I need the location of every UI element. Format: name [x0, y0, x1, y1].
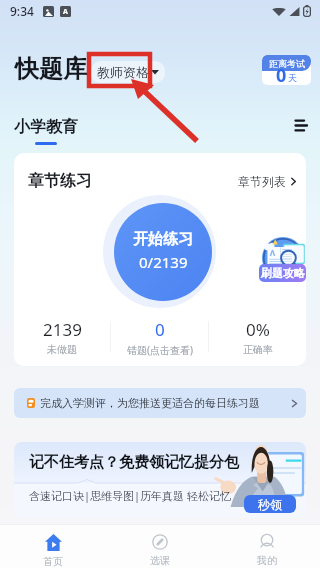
button[interactable]: 小学教育 [14, 117, 78, 145]
staticText: 我的 [257, 554, 277, 567]
button[interactable]: 章节列表 [238, 174, 296, 189]
button[interactable]: Menu [289, 113, 313, 137]
button[interactable]: 首页 [0, 525, 106, 568]
staticText: 未做题 [47, 343, 77, 356]
button[interactable]: 刷题攻略 [262, 237, 304, 279]
staticText: 0 [276, 63, 287, 85]
staticText: 完成入学测评，为您推送更适合的每日练习题 [40, 396, 260, 410]
staticText: 0% [246, 318, 270, 341]
staticText: 首页 [43, 555, 63, 568]
staticText: 快题库 [15, 54, 87, 84]
button[interactable]: 教师资格 [91, 61, 165, 83]
staticText: 距离考试 [269, 58, 305, 69]
staticText: 0 [155, 318, 165, 341]
button[interactable]: 2139 [14, 318, 110, 363]
staticText: 2139 [43, 318, 82, 341]
button[interactable]: 选课 [106, 525, 213, 568]
staticText: A [63, 7, 68, 17]
staticText: 记不住考点？免费领记忆提分包 [29, 453, 239, 472]
staticText: 含速记口诀|思维导图|历年真题 轻松记忆 [29, 488, 231, 503]
staticText: 教师资格 [97, 64, 149, 80]
staticText: 刷题攻略 [261, 266, 305, 280]
button[interactable]: 完成入学测评，为您推送更适合的每日练习题 [14, 388, 306, 418]
staticText: 0/2139 [139, 252, 188, 272]
staticText: 秒领 [258, 497, 282, 512]
staticText: 天 [288, 72, 297, 83]
staticText: 章节列表 [238, 174, 286, 189]
staticText: 9:34 [10, 3, 34, 19]
staticText: 正确率 [243, 343, 273, 356]
staticText: 章节练习 [28, 171, 92, 191]
button[interactable]: 我的 [213, 525, 320, 568]
staticText: 错题(点击查看) [127, 343, 193, 357]
staticText: 开始练习 [133, 230, 193, 249]
button[interactable]: 秒领 [244, 495, 296, 513]
button[interactable]: 距离考试 [262, 55, 311, 85]
button[interactable]: 记不住考点？免费领记忆提分包 [14, 442, 306, 518]
button[interactable]: 0% [209, 318, 306, 363]
button[interactable]: 刷题攻略 [259, 264, 306, 282]
button[interactable]: 开始练习 [114, 203, 212, 301]
staticText: 选课 [150, 554, 170, 567]
button[interactable]: 0 [111, 318, 208, 363]
staticText: 小学教育 [14, 117, 78, 137]
